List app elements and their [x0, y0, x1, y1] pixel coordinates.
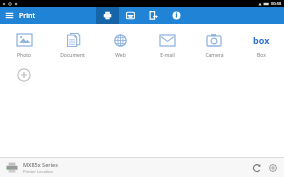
button[interactable]: Add source	[17, 68, 31, 82]
button[interactable]: Camera	[202, 30, 226, 61]
button[interactable]: Print	[96, 7, 119, 24]
button[interactable]: Printer settings	[266, 161, 279, 174]
other: Open navigation drawer	[5, 11, 14, 20]
staticText: E-mail	[160, 52, 175, 59]
button[interactable]: Document	[58, 30, 87, 61]
button[interactable]: MX85x Series	[0, 158, 284, 177]
button[interactable]: Web	[108, 30, 132, 61]
staticText: Camera	[205, 52, 224, 59]
staticText: Web	[115, 52, 126, 59]
staticText: Box	[257, 52, 266, 59]
staticText: Photo	[17, 52, 31, 59]
button[interactable]: Open navigation drawer	[0, 7, 41, 24]
button[interactable]: box	[249, 30, 273, 61]
button[interactable]: Refresh	[250, 161, 263, 174]
button[interactable]: Info	[165, 7, 188, 24]
staticText: MX85x Series	[23, 161, 58, 168]
staticText: Document	[60, 52, 85, 59]
button[interactable]: Scan	[119, 7, 142, 24]
staticText: Printer Location	[23, 169, 54, 174]
button[interactable]: E-mail	[155, 30, 179, 61]
button[interactable]: Photo	[12, 30, 36, 61]
staticText: box	[253, 34, 270, 46]
button[interactable]: Send	[142, 7, 165, 24]
staticText: 00:58	[271, 1, 282, 6]
staticText: Print	[19, 11, 36, 21]
